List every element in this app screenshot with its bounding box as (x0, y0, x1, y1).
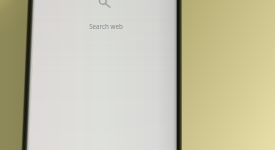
button[interactable]: Search web (86, 22, 126, 31)
button[interactable]: Search (97, 0, 109, 12)
